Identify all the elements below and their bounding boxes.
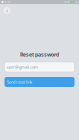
staticText: ‹ xyxy=(6,6,8,15)
button[interactable]: Send reset link xyxy=(4,77,74,87)
staticText: Send reset link xyxy=(7,79,32,85)
staticText: Reset password xyxy=(20,51,59,58)
button[interactable]: Back xyxy=(0,4,13,17)
staticText: user@gmail.com xyxy=(7,64,38,70)
